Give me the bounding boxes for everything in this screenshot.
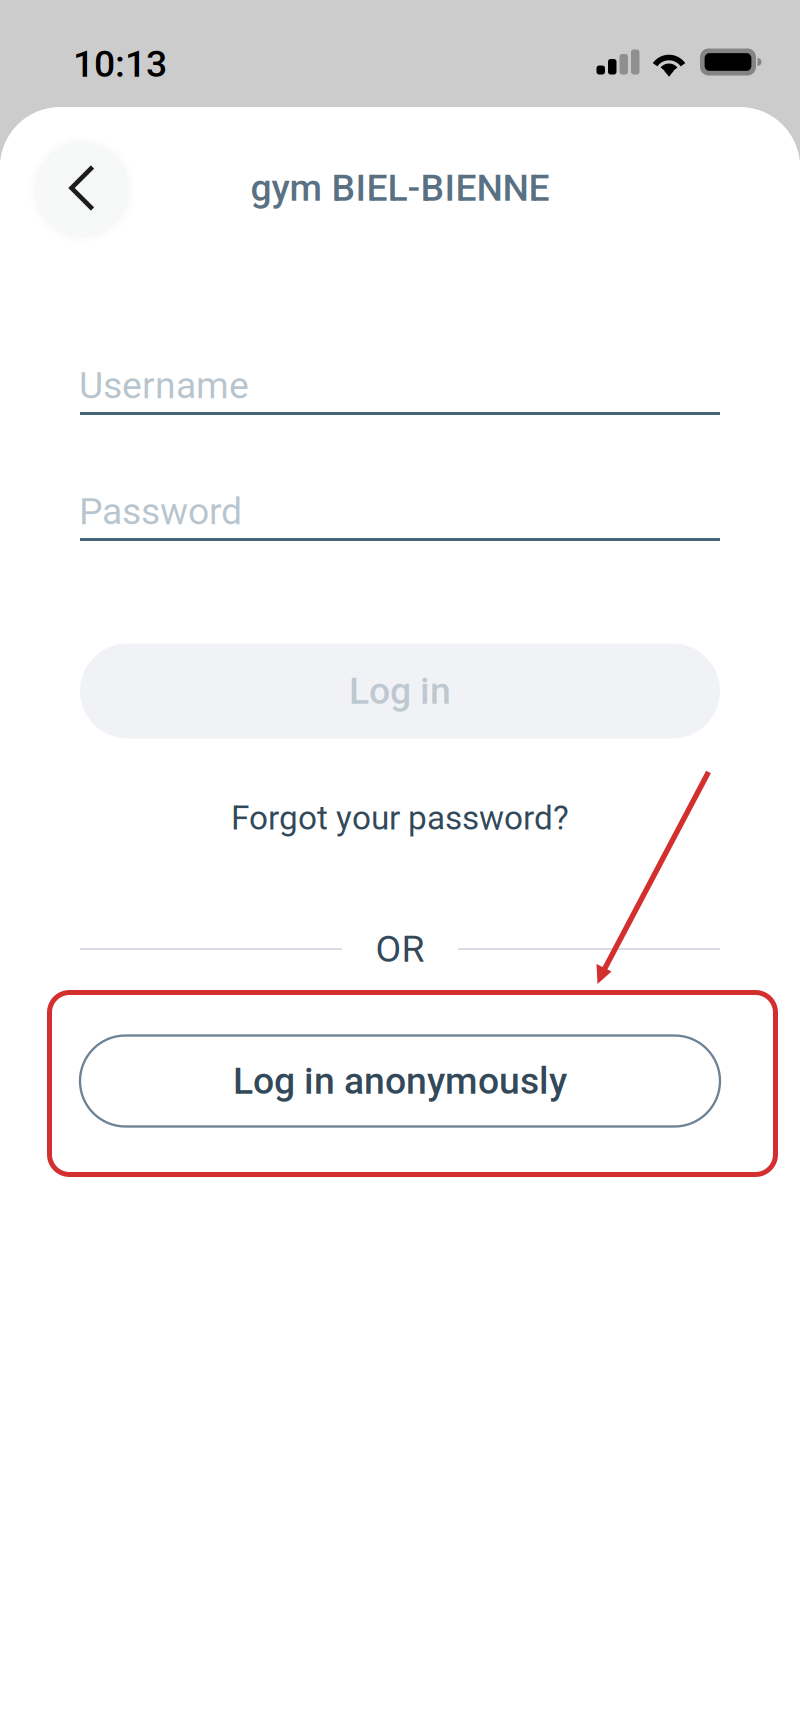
button[interactable]: Forgot your password?	[150, 788, 650, 848]
staticText: Log in anonymously	[233, 1059, 567, 1103]
staticText: Forgot your password?	[231, 798, 569, 838]
staticText: 10:13	[73, 42, 167, 86]
staticText: Password	[79, 490, 242, 533]
button[interactable]: Back	[24, 130, 140, 246]
staticText: Log in	[349, 669, 451, 713]
button[interactable]: Password	[80, 485, 720, 541]
button[interactable]: Username	[80, 359, 720, 415]
staticText: gym BIEL-BIENNE	[250, 166, 549, 210]
staticText: Username	[79, 364, 249, 407]
button[interactable]: Log in	[80, 643, 720, 738]
button[interactable]: Log in anonymously	[80, 1035, 720, 1126]
staticText: OR	[375, 927, 424, 971]
